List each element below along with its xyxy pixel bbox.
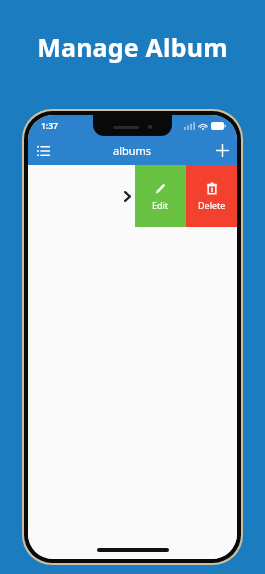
button[interactable] [28,165,135,227]
staticText: albums [113,143,152,158]
staticText: 1:37 [41,120,58,132]
button[interactable]: Add album [207,136,237,165]
button[interactable]: Delete [186,165,237,227]
staticText: Edit [152,199,169,211]
button[interactable]: Menu [28,136,58,165]
staticText: Delete [198,199,226,211]
button[interactable]: Edit [135,165,186,227]
staticText: Manage Album [0,30,265,64]
